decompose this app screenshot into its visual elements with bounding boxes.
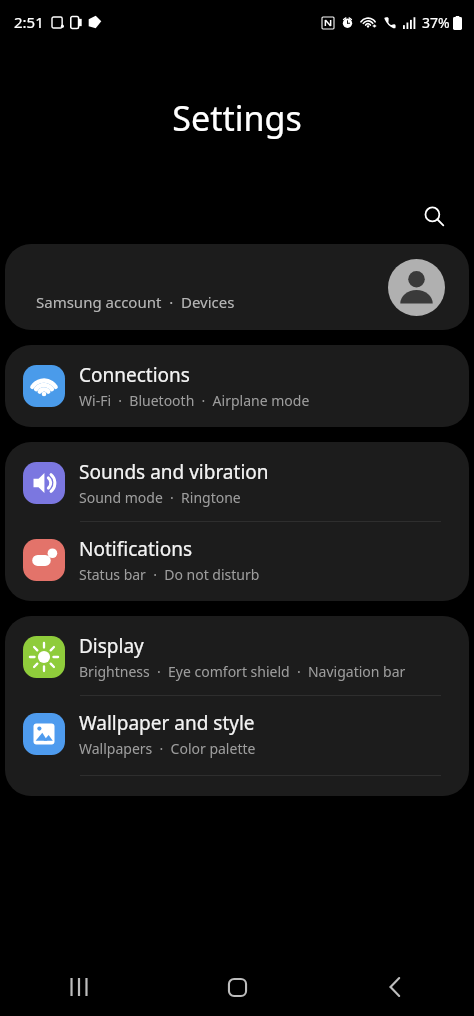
button[interactable]: Wallpaper and style <box>5 696 469 775</box>
button[interactable]: Recent apps <box>0 958 158 1016</box>
staticText: Wi-Fi · Bluetooth · Airplane mode <box>79 391 310 410</box>
button[interactable]: Display <box>5 616 469 695</box>
staticText: Settings <box>172 95 302 141</box>
button[interactable]: Connections <box>5 345 469 427</box>
staticText: Wallpaper and style <box>79 710 255 736</box>
staticText: Samsung account · Devices <box>36 292 235 312</box>
staticText: Status bar · Do not disturb <box>79 565 260 584</box>
staticText: Connections <box>79 362 190 388</box>
staticText: Brightness · Eye comfort shield · Naviga… <box>79 662 406 681</box>
staticText: 37% <box>422 13 450 32</box>
button[interactable]: Sounds and vibration <box>5 442 469 521</box>
button[interactable]: Home <box>158 958 316 1016</box>
button[interactable]: Search settings <box>412 194 456 238</box>
staticText: Notifications <box>79 536 193 562</box>
staticText: 2:51 <box>14 12 44 32</box>
button[interactable]: Samsung account · Devices <box>5 244 469 330</box>
staticText: Wallpapers · Color palette <box>79 739 256 758</box>
button[interactable]: Notifications <box>5 522 469 601</box>
staticText: Sounds and vibration <box>79 459 269 485</box>
staticText: Sound mode · Ringtone <box>79 488 241 507</box>
button[interactable]: Back <box>316 958 474 1016</box>
staticText: Display <box>79 633 144 659</box>
